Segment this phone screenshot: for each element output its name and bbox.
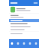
button[interactable] [9,19,39,22]
button[interactable]: Tab [27,39,33,48]
button[interactable] [9,14,39,19]
button[interactable]: Action [34,2,38,4]
button[interactable] [9,32,39,36]
button[interactable] [9,22,39,25]
button[interactable] [9,25,39,28]
button[interactable]: Tab [33,39,39,48]
button[interactable] [9,6,39,13]
button[interactable]: Tab [21,39,27,48]
button[interactable]: Tab [9,39,15,48]
button[interactable]: Title [10,2,17,4]
button[interactable]: Tab [15,39,21,48]
button[interactable] [9,28,39,31]
